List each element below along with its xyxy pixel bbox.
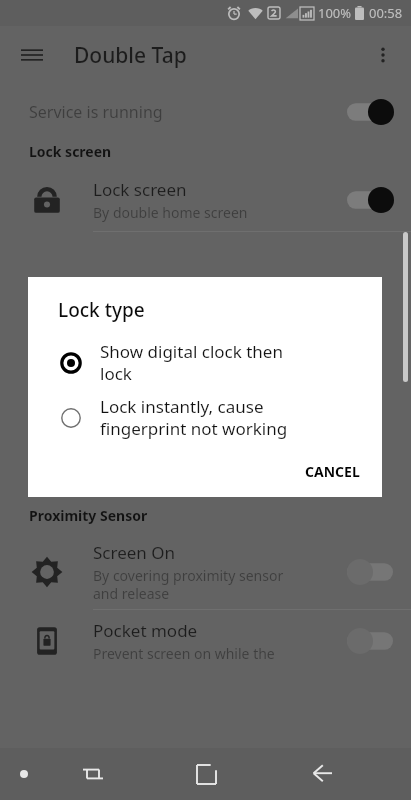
staticText: 100% bbox=[318, 4, 352, 22]
staticText: Lock type bbox=[58, 297, 145, 323]
staticText: Proximity Sensor bbox=[29, 506, 148, 525]
button[interactable]: More options bbox=[363, 35, 403, 75]
staticText: Lock instantly, cause fingerprint not wo… bbox=[100, 395, 288, 440]
staticText: Lock screen bbox=[93, 178, 187, 201]
button[interactable]: Toggle on bbox=[345, 186, 395, 214]
staticText: By covering proximity sensor and release bbox=[93, 566, 284, 603]
button[interactable]: Lock screen bbox=[0, 169, 411, 231]
staticText: Service is running bbox=[29, 101, 163, 123]
button[interactable]: Multi window bbox=[70, 751, 116, 797]
staticText: Prevent screen on while the bbox=[93, 644, 275, 663]
staticText: Power Icon bbox=[93, 438, 183, 461]
button[interactable]: Power Icon bbox=[0, 430, 411, 490]
button[interactable]: Screen On bbox=[0, 535, 411, 609]
staticText: CANCEL bbox=[305, 462, 360, 481]
staticText: Screen On bbox=[93, 541, 176, 564]
button[interactable]: Back bbox=[299, 751, 345, 797]
button[interactable]: Indicator bbox=[6, 756, 42, 792]
button[interactable]: Recent apps bbox=[183, 751, 229, 797]
button[interactable]: Toggle off bbox=[345, 627, 395, 655]
staticText: Double Tap bbox=[74, 41, 187, 70]
staticText: Lock screen bbox=[29, 142, 112, 161]
staticText: Pocket mode bbox=[93, 619, 198, 642]
button[interactable]: Show digital clock then lock bbox=[28, 337, 382, 388]
button[interactable]: Lock instantly, cause fingerprint not wo… bbox=[28, 392, 382, 443]
button[interactable]: Pocket mode bbox=[0, 610, 411, 672]
button[interactable]: Toggle on bbox=[345, 98, 395, 126]
button[interactable]: CANCEL bbox=[295, 454, 370, 489]
button[interactable]: Toggle off bbox=[345, 558, 395, 586]
staticText: Show digital clock then lock bbox=[100, 340, 283, 385]
staticText: By double home screen bbox=[93, 203, 248, 222]
button[interactable]: Open navigation drawer bbox=[12, 35, 52, 75]
button[interactable]: Service is running bbox=[0, 84, 411, 140]
staticText: 00:58 bbox=[369, 4, 403, 22]
